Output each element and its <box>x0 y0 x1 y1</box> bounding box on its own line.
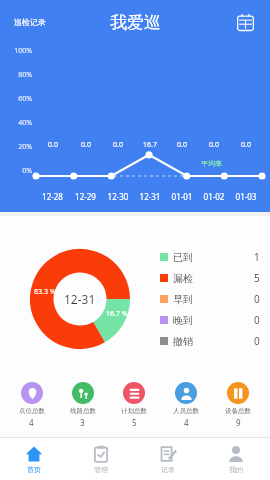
staticText: 60% <box>6 94 32 104</box>
staticText: 3 <box>80 417 85 428</box>
button[interactable]: 巡检记录 <box>14 17 46 27</box>
staticText: 线路总数 <box>70 407 96 415</box>
staticText: 首页 <box>27 465 41 474</box>
staticText: 0 <box>254 334 260 348</box>
button[interactable]: Calendar <box>232 9 258 35</box>
staticText: 平均率 <box>201 159 222 168</box>
staticText: 我爱巡 <box>110 12 161 33</box>
staticText: 5 <box>254 271 260 285</box>
staticText: 12-28 <box>36 191 69 202</box>
staticText: 我的 <box>229 465 243 474</box>
staticText: 01-02 <box>198 191 230 202</box>
staticText: 16.7 % <box>106 309 128 319</box>
staticText: 0 <box>254 313 260 327</box>
button[interactable]: 漏检 <box>160 271 260 285</box>
staticText: 12-29 <box>69 191 102 202</box>
staticText: 点位总数 <box>19 407 45 415</box>
staticText: 40% <box>6 118 32 128</box>
button[interactable]: 设备总数 <box>212 380 264 430</box>
staticText: 0 <box>254 292 260 306</box>
button[interactable]: 管理 <box>67 438 134 480</box>
button[interactable]: 计划总数 <box>108 380 160 430</box>
staticText: 计划总数 <box>121 407 147 415</box>
button[interactable]: 点位总数 <box>6 380 57 430</box>
staticText: 80% <box>6 70 32 80</box>
button[interactable]: 撤销 <box>160 334 260 348</box>
staticText: 巡检记录 <box>14 17 46 27</box>
staticText: 20% <box>6 142 32 152</box>
staticText: 12-30 <box>102 191 134 202</box>
staticText: 9 <box>236 417 241 428</box>
staticText: 早到 <box>173 293 193 306</box>
staticText: 12-31 <box>134 191 166 202</box>
staticText: 人员总数 <box>173 407 199 415</box>
staticText: 12-31 <box>64 291 96 307</box>
button[interactable]: 首页 <box>0 438 67 480</box>
staticText: 设备总数 <box>225 407 251 415</box>
button[interactable]: 已到 <box>160 250 260 264</box>
staticText: 漏检 <box>173 272 193 285</box>
staticText: 0.0 <box>81 140 91 150</box>
staticText: 0.0 <box>209 140 219 150</box>
button[interactable]: 线路总数 <box>57 380 108 430</box>
staticText: 记录 <box>161 465 175 474</box>
staticText: 01-03 <box>230 191 262 202</box>
staticText: 4 <box>29 417 34 428</box>
staticText: 01-01 <box>166 191 198 202</box>
button[interactable]: 我的 <box>202 438 270 480</box>
button[interactable]: 人员总数 <box>160 380 212 430</box>
staticText: 0.0 <box>241 140 251 150</box>
staticText: 83.3 % <box>34 287 56 297</box>
staticText: 1 <box>254 250 260 264</box>
staticText: 4 <box>184 417 189 428</box>
button[interactable]: 早到 <box>160 292 260 306</box>
staticText: 管理 <box>94 465 108 474</box>
staticText: 0.0 <box>113 140 123 150</box>
staticText: 已到 <box>173 251 193 264</box>
button[interactable]: 记录 <box>134 438 202 480</box>
staticText: 晚到 <box>173 314 193 327</box>
staticText: 0.0 <box>177 140 187 150</box>
staticText: 撤销 <box>173 335 193 348</box>
staticText: 16.7 <box>143 140 157 150</box>
staticText: 0% <box>6 166 32 176</box>
staticText: 0.0 <box>48 140 58 150</box>
staticText: 5 <box>132 417 137 428</box>
staticText: 100% <box>6 46 32 56</box>
button[interactable]: 晚到 <box>160 313 260 327</box>
